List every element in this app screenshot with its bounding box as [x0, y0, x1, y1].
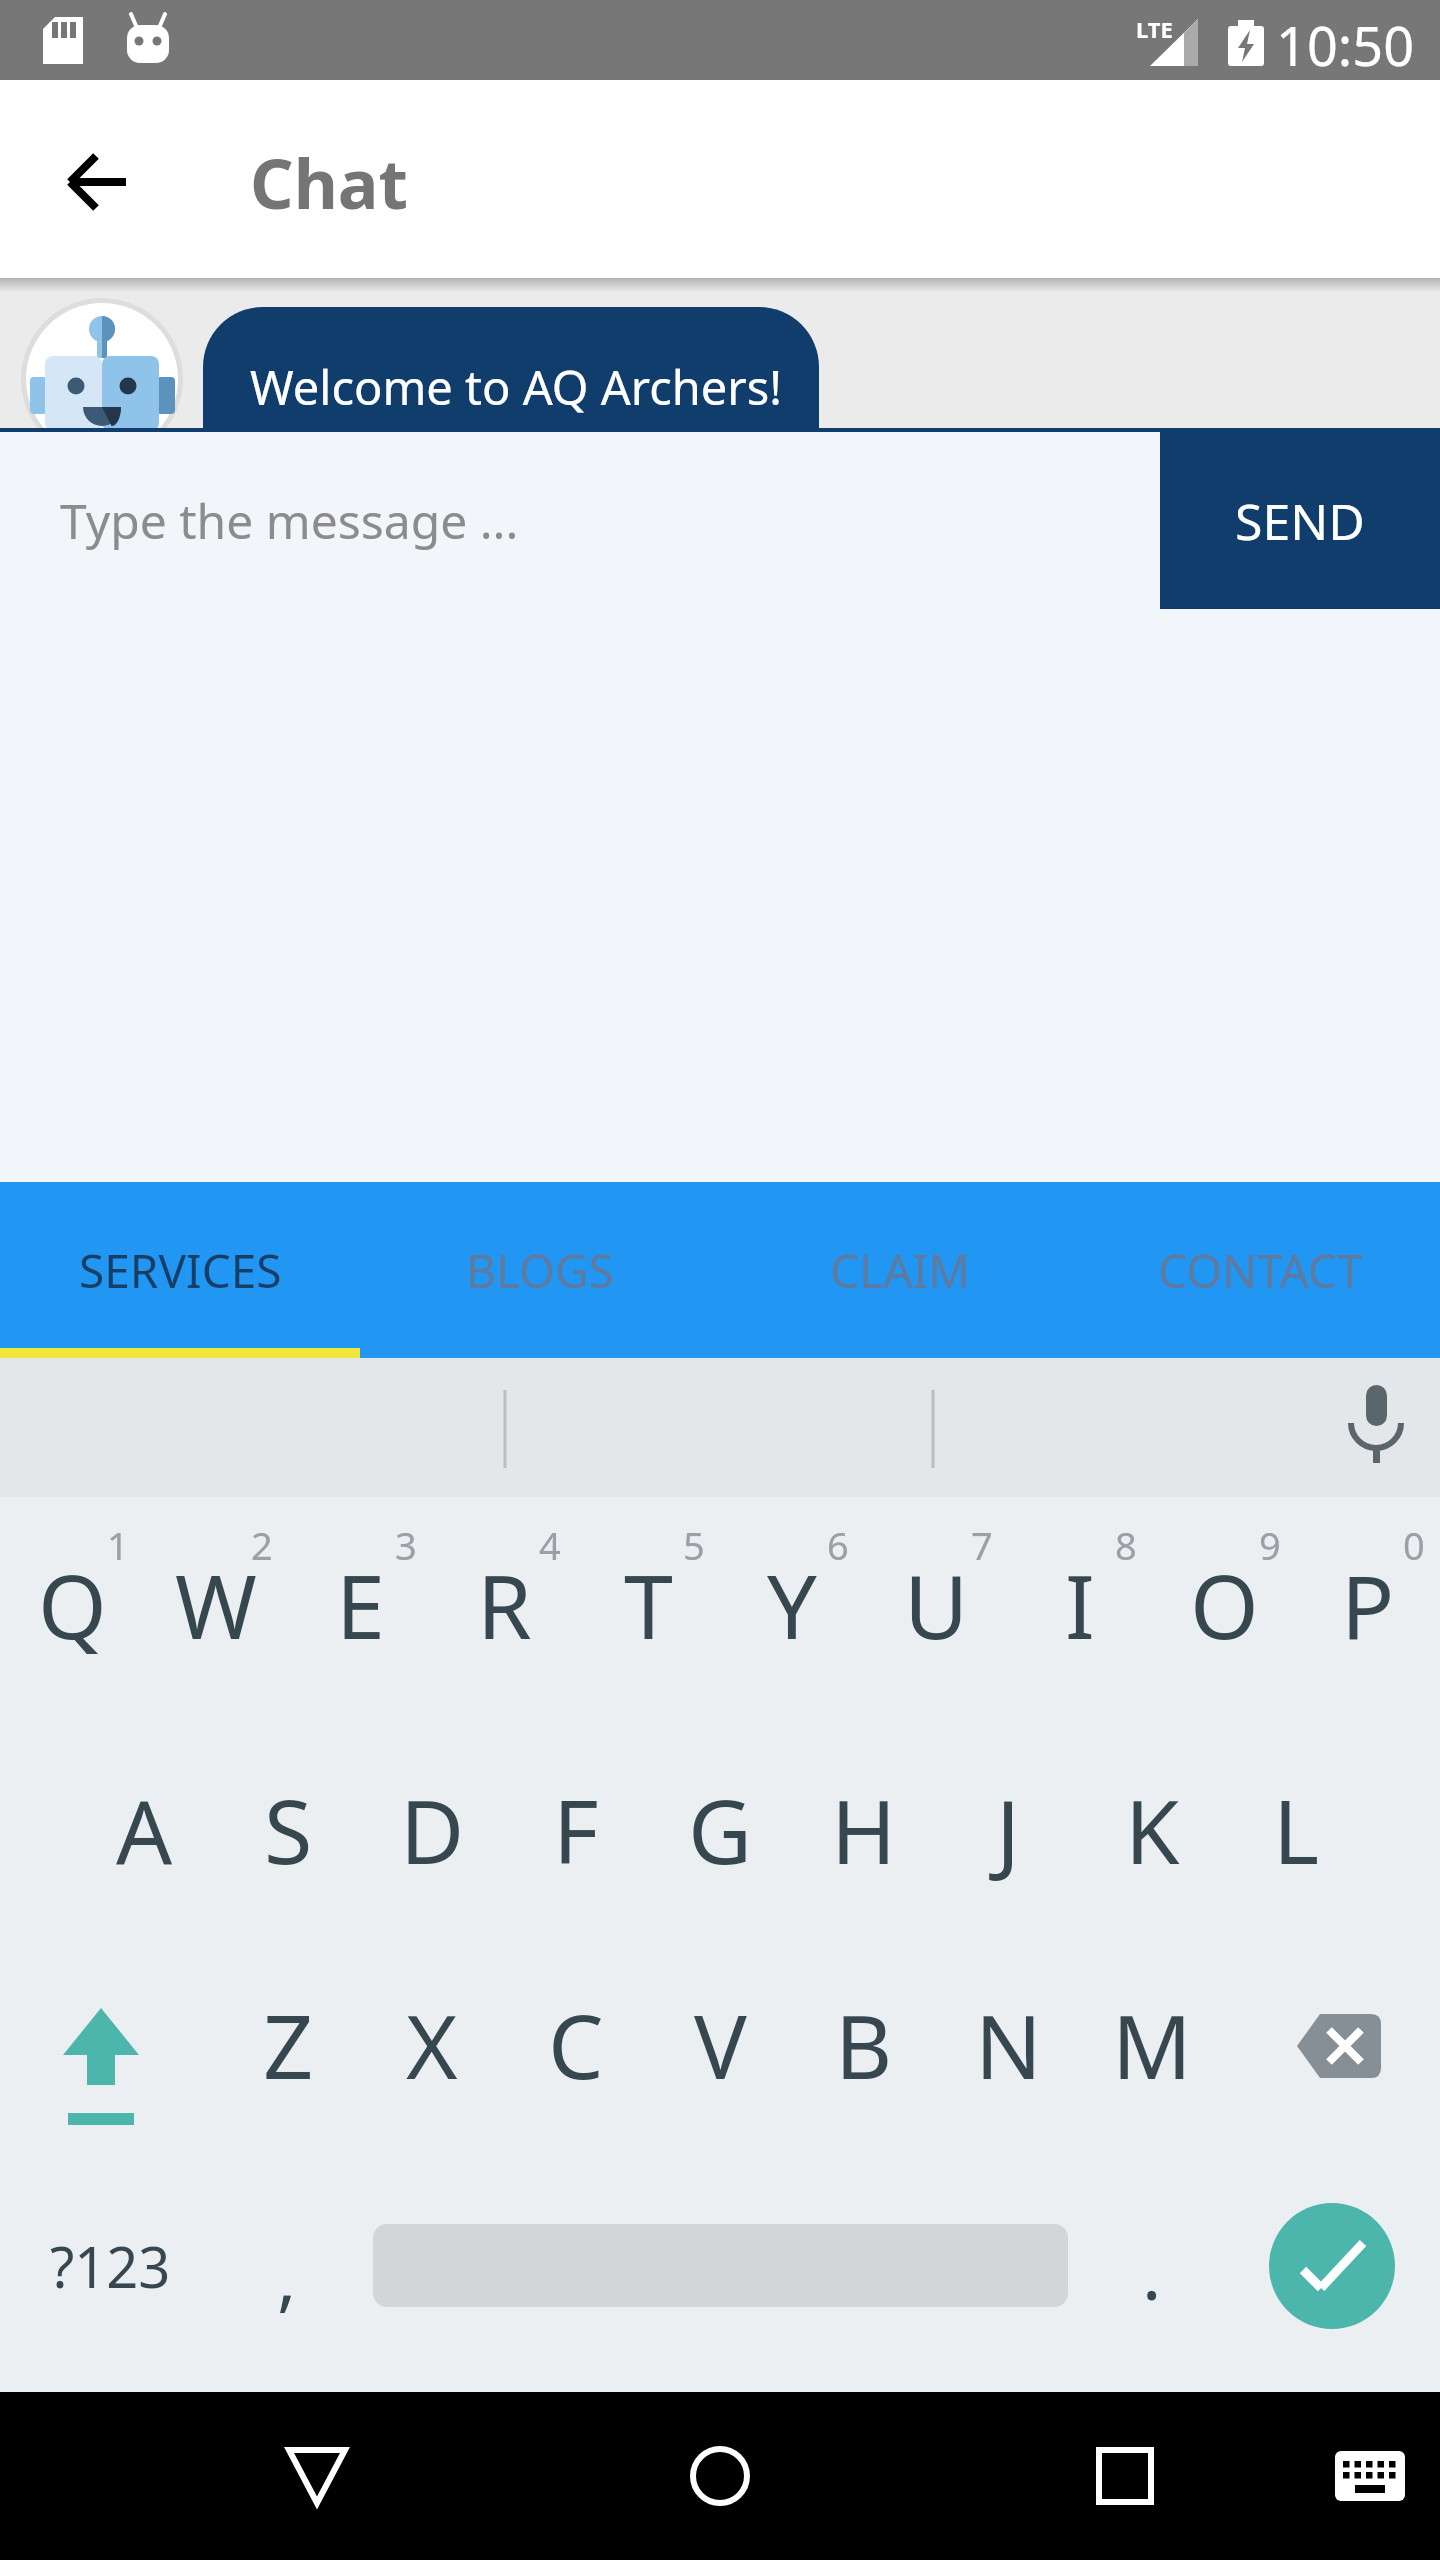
- staticText: Welcome to AQ Archers!: [250, 355, 782, 419]
- button[interactable]: B: [792, 1965, 936, 2125]
- button[interactable]: L: [1224, 1750, 1368, 1910]
- button[interactable]: BLOGS: [360, 1182, 720, 1358]
- staticText: CLAIM: [830, 1239, 970, 1302]
- button[interactable]: I: [1008, 1525, 1152, 1685]
- staticText: ,: [277, 2227, 297, 2325]
- staticText: A: [116, 1770, 173, 1890]
- button[interactable]: SEND: [1160, 432, 1440, 609]
- staticText: N: [975, 1985, 1042, 2105]
- staticText: 4: [539, 1519, 561, 1571]
- button[interactable]: Q: [0, 1525, 144, 1685]
- button[interactable]: T: [576, 1525, 720, 1685]
- button[interactable]: [1268, 1965, 1412, 2125]
- staticText: 5: [683, 1519, 705, 1571]
- button[interactable]: X: [360, 1965, 504, 2125]
- staticText: V: [694, 1985, 747, 2105]
- button[interactable]: Y: [720, 1525, 864, 1685]
- button[interactable]: Z: [216, 1965, 360, 2125]
- staticText: 9: [1259, 1519, 1281, 1571]
- staticText: Chat: [250, 136, 409, 229]
- staticText: 8: [1115, 1519, 1137, 1571]
- staticText: 3: [395, 1519, 417, 1571]
- staticText: K: [1125, 1770, 1180, 1890]
- staticText: H: [831, 1770, 897, 1890]
- button[interactable]: CONTACT: [1080, 1182, 1440, 1358]
- staticText: L: [1273, 1770, 1320, 1890]
- staticText: Type the message ...: [60, 488, 519, 553]
- staticText: W: [175, 1545, 257, 1665]
- staticText: 2: [251, 1519, 273, 1571]
- button[interactable]: [1045, 2396, 1205, 2556]
- button[interactable]: [640, 2396, 800, 2556]
- button[interactable]: .: [1080, 2186, 1224, 2346]
- button[interactable]: C: [504, 1965, 648, 2125]
- button[interactable]: G: [648, 1750, 792, 1910]
- staticText: 7: [971, 1519, 993, 1571]
- button[interactable]: K: [1080, 1750, 1224, 1910]
- staticText: LTE: [1136, 14, 1173, 44]
- staticText: J: [996, 1770, 1021, 1890]
- button[interactable]: CLAIM: [720, 1182, 1080, 1358]
- staticText: 10:50: [1276, 8, 1415, 72]
- staticText: U: [904, 1545, 969, 1665]
- staticText: X: [406, 1985, 458, 2105]
- button[interactable]: S: [216, 1750, 360, 1910]
- staticText: Y: [767, 1545, 817, 1665]
- button[interactable]: F: [504, 1750, 648, 1910]
- staticText: BLOGS: [466, 1239, 614, 1302]
- button[interactable]: J: [936, 1750, 1080, 1910]
- button[interactable]: SERVICES: [0, 1182, 360, 1358]
- button[interactable]: H: [792, 1750, 936, 1910]
- button[interactable]: U: [864, 1525, 1008, 1685]
- staticText: 6: [827, 1519, 849, 1571]
- staticText: O: [1190, 1545, 1259, 1665]
- staticText: I: [1065, 1545, 1095, 1665]
- staticText: 1: [107, 1519, 129, 1571]
- staticText: D: [400, 1770, 465, 1890]
- staticText: SEND: [1235, 487, 1365, 555]
- button[interactable]: [1269, 2203, 1395, 2329]
- staticText: G: [688, 1770, 753, 1890]
- staticText: Z: [263, 1985, 314, 2105]
- button[interactable]: O: [1152, 1525, 1296, 1685]
- button[interactable]: R: [432, 1525, 576, 1685]
- button[interactable]: N: [936, 1965, 1080, 2125]
- staticText: F: [553, 1770, 599, 1890]
- button[interactable]: [237, 2396, 397, 2556]
- staticText: T: [624, 1545, 673, 1665]
- button[interactable]: [1310, 2412, 1430, 2532]
- staticText: C: [548, 1985, 604, 2105]
- staticText: M: [1112, 1985, 1192, 2105]
- button[interactable]: D: [360, 1750, 504, 1910]
- button[interactable]: ,: [215, 2186, 359, 2346]
- button[interactable]: M: [1080, 1965, 1224, 2125]
- button[interactable]: A: [72, 1750, 216, 1910]
- button[interactable]: V: [648, 1965, 792, 2125]
- staticText: SERVICES: [79, 1239, 282, 1302]
- staticText: R: [477, 1545, 532, 1665]
- staticText: CONTACT: [1158, 1239, 1363, 1302]
- button[interactable]: [40, 124, 156, 240]
- staticText: S: [264, 1770, 313, 1890]
- button[interactable]: E: [288, 1525, 432, 1685]
- staticText: .: [1142, 2223, 1162, 2321]
- staticText: Q: [38, 1545, 107, 1665]
- button[interactable]: P: [1296, 1525, 1440, 1685]
- button[interactable]: ?123: [30, 2186, 190, 2346]
- staticText: P: [1341, 1545, 1395, 1665]
- button[interactable]: W: [144, 1525, 288, 1685]
- button[interactable]: [29, 1965, 173, 2125]
- staticText: B: [835, 1985, 893, 2105]
- staticText: ?123: [50, 2228, 171, 2304]
- staticText: E: [336, 1545, 385, 1665]
- button[interactable]: [1313, 1358, 1440, 1497]
- staticText: 0: [1403, 1519, 1425, 1571]
